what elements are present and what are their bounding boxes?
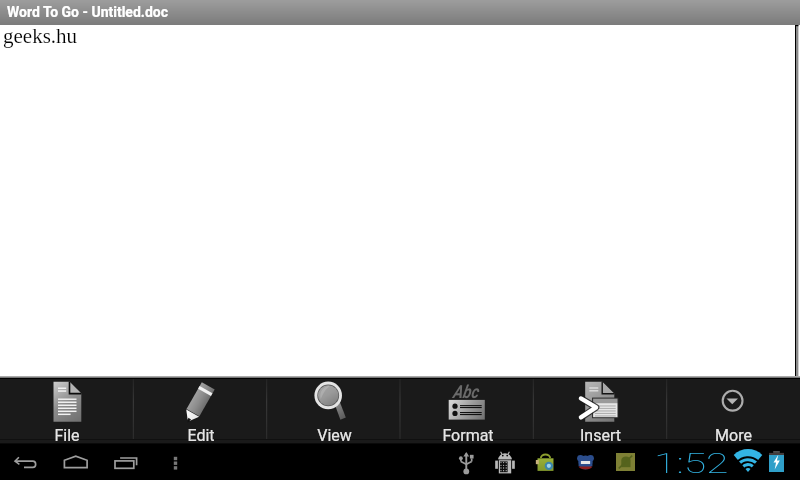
staticText: 1:52 [654, 447, 728, 480]
staticText: geeks.hu [3, 24, 78, 47]
button[interactable]: Back [8, 447, 40, 475]
staticText: File [54, 426, 80, 445]
staticText: Abc [452, 381, 478, 402]
staticText: View [317, 426, 352, 445]
staticText: Edit [187, 426, 215, 445]
staticText: Word To Go - Untitled.doc [7, 4, 169, 20]
button[interactable]: Home [59, 447, 91, 475]
button[interactable]: Insert [534, 379, 667, 444]
button[interactable]: Abc [401, 379, 534, 444]
staticText: Format [442, 426, 494, 445]
button[interactable]: Recent apps [110, 447, 142, 475]
staticText: More [715, 426, 752, 445]
button[interactable]: More [667, 379, 800, 444]
button[interactable]: View [268, 379, 401, 444]
button[interactable]: File [0, 379, 134, 444]
button[interactable]: Edit [134, 379, 268, 444]
staticText: Insert [580, 426, 621, 445]
button[interactable]: Menu [163, 447, 187, 475]
